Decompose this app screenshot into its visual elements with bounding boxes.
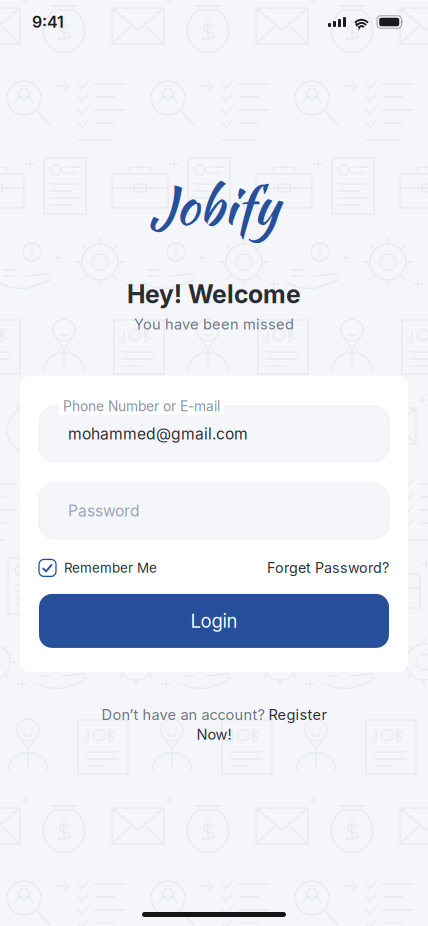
staticText: Hey! Welcome [127, 279, 301, 309]
staticText: mohammed@gmail.com [68, 424, 248, 443]
button[interactable]: Login [39, 594, 389, 648]
staticText: Forget Password? [267, 559, 389, 577]
staticText: Register [268, 706, 326, 724]
staticText: Phone Number or E-mail [63, 398, 220, 415]
staticText: Now! [196, 726, 231, 743]
staticText: Login [190, 610, 237, 632]
button[interactable]: Don’t have an account? [101, 706, 326, 743]
button[interactable]: Remember Me [39, 559, 157, 576]
staticText: You have been missed [134, 315, 294, 333]
staticText: Password [68, 501, 140, 520]
staticText: Remember Me [64, 560, 157, 576]
button[interactable]: Forget Password? [267, 559, 389, 577]
staticText: Don’t have an account? [101, 706, 268, 724]
staticText: 9:41 [32, 12, 64, 32]
staticText: Jobify [149, 168, 278, 243]
